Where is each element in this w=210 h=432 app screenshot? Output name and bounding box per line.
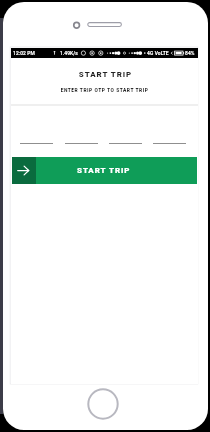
button[interactable]: OTP digit 2 xyxy=(65,130,98,144)
staticText: START TRIP xyxy=(77,166,131,175)
button[interactable]: OTP digit 4 xyxy=(153,130,186,144)
other: Go xyxy=(17,165,30,176)
staticText: ENTER TRIP OTP TO START TRIP xyxy=(11,87,198,93)
button[interactable]: OTP digit 1 xyxy=(20,130,53,144)
staticText: 84% xyxy=(185,50,195,56)
staticText: 1.49K/s xyxy=(60,50,78,56)
button[interactable]: Go xyxy=(12,157,197,184)
button[interactable]: OTP digit 3 xyxy=(109,130,142,144)
staticText: 4G VoLTE xyxy=(147,50,169,56)
staticText: START TRIP xyxy=(12,70,199,79)
staticText: 12:02 PM xyxy=(13,50,35,56)
